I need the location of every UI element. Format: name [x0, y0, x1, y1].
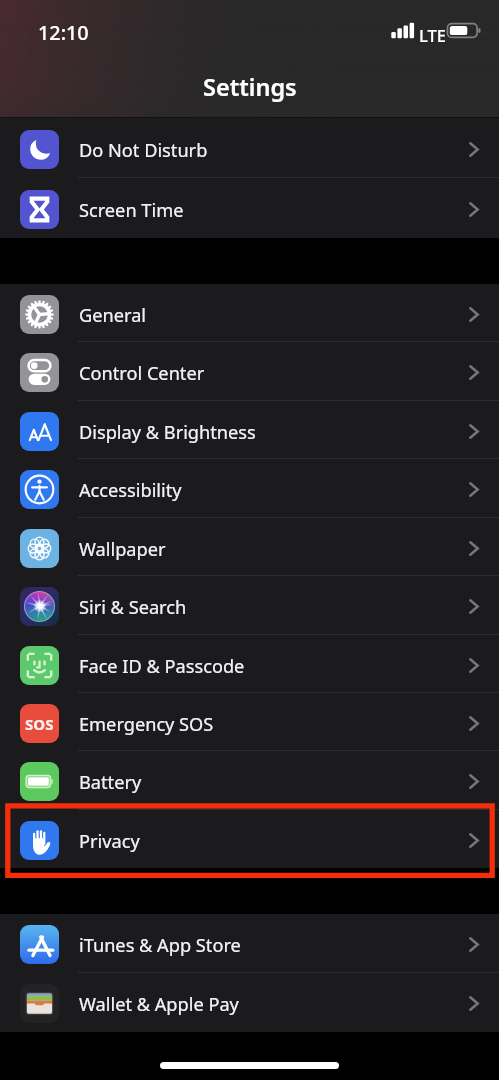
staticText: LTE	[419, 24, 446, 46]
staticText: Display & Brightness	[79, 420, 256, 445]
button[interactable]: Screen Time	[0, 178, 499, 238]
button[interactable]: SOS	[0, 693, 499, 751]
button[interactable]: Accessibility	[0, 459, 499, 518]
other: Signal and battery status	[389, 21, 484, 40]
staticText: Siri & Search	[79, 595, 187, 620]
button[interactable]: Display & Brightness	[0, 401, 499, 459]
staticText: Face ID & Passcode	[79, 654, 245, 679]
staticText: iTunes & App Store	[79, 933, 241, 958]
staticText: Accessibility	[79, 478, 182, 503]
button[interactable]: Control Center	[0, 342, 499, 401]
staticText: Privacy	[79, 829, 140, 854]
staticText: SOS	[25, 714, 54, 734]
staticText: Control Center	[79, 361, 205, 386]
staticText: Battery	[79, 770, 142, 795]
button[interactable]: iTunes & App Store	[0, 914, 499, 973]
button[interactable]: Face ID & Passcode	[0, 635, 499, 693]
staticText: General	[79, 303, 147, 328]
staticText: 12:10	[38, 19, 89, 46]
staticText: Wallpaper	[79, 537, 166, 562]
button[interactable]: General	[0, 284, 499, 342]
button[interactable]: Do Not Disturb	[0, 118, 499, 178]
staticText: Emergency SOS	[79, 712, 214, 737]
button[interactable]: Battery	[0, 751, 499, 810]
staticText: Wallet & Apple Pay	[79, 992, 239, 1017]
button[interactable]: Wallpaper	[0, 518, 499, 576]
button[interactable]: Wallet & Apple Pay	[0, 973, 499, 1032]
staticText: Do Not Disturb	[79, 138, 208, 163]
staticText: Settings	[203, 71, 297, 103]
button[interactable]: Siri & Search	[0, 576, 499, 635]
button[interactable]: Privacy	[0, 810, 499, 868]
staticText: Screen Time	[79, 198, 184, 223]
